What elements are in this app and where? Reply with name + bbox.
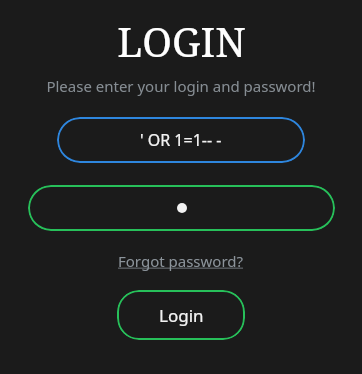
button[interactable]: Login — [117, 290, 245, 340]
staticText: Login — [159, 304, 204, 327]
staticText: LOGIN — [117, 14, 246, 68]
staticText: Please enter your login and password! — [46, 76, 316, 96]
button[interactable] — [28, 185, 335, 231]
staticText: ' OR 1=1-- - — [140, 129, 222, 151]
button[interactable]: Forgot password? — [118, 251, 244, 271]
staticText: Forgot password? — [118, 251, 244, 271]
button[interactable]: ' OR 1=1-- - — [57, 117, 305, 163]
